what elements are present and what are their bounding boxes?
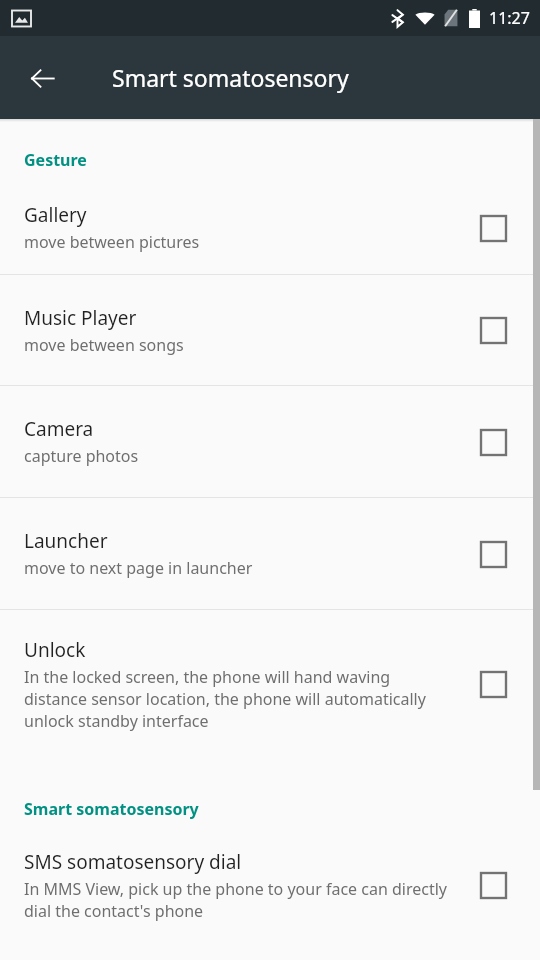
staticText: capture photos [24, 445, 139, 467]
button[interactable]: Gallery [0, 181, 540, 274]
button[interactable]: Camera [0, 386, 540, 497]
staticText: Gallery [24, 202, 87, 228]
staticText: move to next page in launcher [24, 557, 253, 579]
button[interactable]: Music Player [0, 275, 540, 385]
button[interactable]: SMS somatosensory dial [0, 830, 540, 940]
staticText: Music Player [24, 305, 137, 331]
staticText: move between pictures [24, 231, 200, 253]
button[interactable]: Camera checkbox [466, 415, 520, 469]
button[interactable]: Unlock checkbox [466, 657, 520, 711]
button[interactable]: Launcher checkbox [466, 527, 520, 581]
staticText: Unlock [24, 637, 86, 663]
staticText: In MMS View, pick up the phone to your f… [24, 878, 452, 922]
button[interactable]: Back [14, 50, 70, 106]
button[interactable]: Gallery checkbox [466, 201, 520, 255]
staticText: Launcher [24, 528, 108, 554]
staticText: Smart somatosensory [112, 62, 349, 93]
staticText: 11:27 [489, 7, 530, 29]
staticText: In the locked screen, the phone will han… [24, 666, 452, 732]
staticText: Gesture [24, 149, 87, 171]
staticText: move between songs [24, 334, 184, 356]
staticText: SMS somatosensory dial [24, 849, 242, 875]
button[interactable]: Launcher [0, 498, 540, 609]
staticText: Smart somatosensory [24, 798, 199, 820]
button[interactable]: SMS somatosensory dial checkbox [466, 858, 520, 912]
button[interactable]: Unlock [0, 610, 540, 758]
button[interactable]: Music Player checkbox [466, 303, 520, 357]
staticText: Camera [24, 416, 94, 442]
